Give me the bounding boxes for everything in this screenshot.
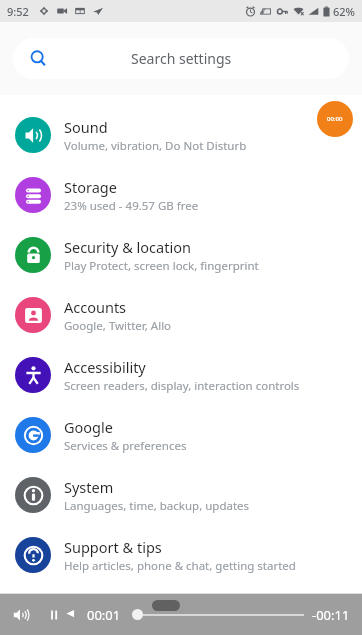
staticText: 9:52 [7, 4, 29, 19]
button[interactable]: Accessibility [0, 345, 362, 405]
button[interactable]: Search settings [13, 38, 349, 79]
staticText: Sound [64, 117, 108, 137]
staticText: Screen readers, display, interaction con… [64, 378, 300, 394]
button[interactable]: Volume [12, 606, 30, 624]
button[interactable]: Seek position [132, 609, 143, 620]
button[interactable]: Google [0, 405, 362, 465]
staticText: Search settings [131, 49, 232, 68]
staticText: 00:01 [87, 606, 121, 624]
staticText: Accessibility [64, 357, 146, 377]
staticText: Google, Twitter, Allo [64, 318, 172, 334]
staticText: 00:00 [327, 115, 343, 123]
button[interactable]: Timer [317, 101, 353, 137]
button[interactable]: Security & location [0, 225, 362, 285]
button[interactable]: Storage [0, 165, 362, 225]
staticText: Google [64, 417, 113, 437]
staticText: 62% [333, 4, 355, 19]
staticText: Support & tips [64, 537, 162, 557]
staticText: Languages, time, backup, updates [64, 498, 250, 514]
staticText: 23% used - 49.57 GB free [64, 198, 199, 214]
staticText: Volume, vibration, Do Not Disturb [64, 138, 247, 154]
staticText: Play Protect, screen lock, fingerprint [64, 258, 259, 274]
staticText: Storage [64, 177, 117, 197]
button[interactable]: System [0, 465, 362, 525]
staticText: Security & location [64, 237, 191, 257]
button[interactable]: Sound [0, 105, 362, 165]
staticText: System [64, 477, 114, 497]
staticText: Services & preferences [64, 438, 187, 454]
button[interactable]: Pause [48, 608, 62, 622]
button[interactable]: Support & tips [0, 525, 362, 585]
staticText: Accounts [64, 297, 127, 317]
staticText: Help articles, phone & chat, getting sta… [64, 558, 296, 574]
staticText: -00:11 [312, 606, 350, 624]
button[interactable]: Rewind [64, 608, 78, 622]
button[interactable]: Accounts [0, 285, 362, 345]
